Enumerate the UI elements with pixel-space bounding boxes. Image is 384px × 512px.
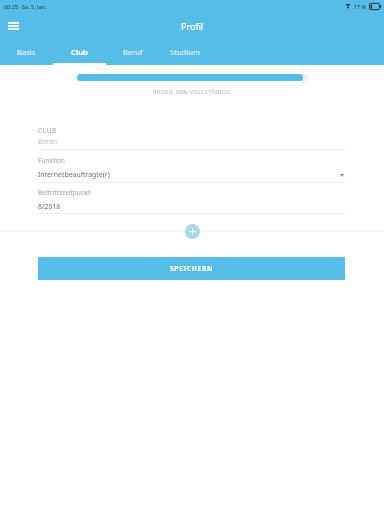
button[interactable]: Club <box>53 43 106 65</box>
staticText: Profil <box>181 20 204 32</box>
button[interactable]: CLUB <box>38 123 345 150</box>
button[interactable]: Open navigation menu <box>1 14 25 38</box>
staticText: Berlin <box>38 137 58 146</box>
button[interactable]: Basis <box>0 43 53 65</box>
staticText: Beruf <box>123 47 143 57</box>
staticText: 00:25 <box>4 3 18 10</box>
staticText: SPEICHERN <box>170 264 214 273</box>
staticText: 17 % <box>354 3 367 10</box>
staticText: Funktion <box>38 156 65 165</box>
staticText: Beitrittszeitpunkt <box>38 188 91 197</box>
button[interactable]: SPEICHERN <box>38 257 345 280</box>
staticText: Basis <box>17 47 36 57</box>
button[interactable]: Beruf <box>106 43 159 65</box>
button[interactable]: Beitrittszeitpunkt <box>38 185 345 214</box>
staticText: CLUB <box>38 126 57 135</box>
staticText: Club <box>71 47 88 57</box>
staticText: 8/2018 <box>38 202 61 211</box>
button[interactable]: Funktion <box>38 153 345 183</box>
button[interactable]: Studium <box>159 43 212 65</box>
staticText: Sa. 5. Jan. <box>22 3 47 10</box>
staticText: Internetbeauftragte(r) <box>38 170 110 179</box>
staticText: PROFIL 98% VOLLSTÄNDIG <box>0 88 384 96</box>
staticText: Studium <box>170 47 201 57</box>
button[interactable]: Add entry <box>185 224 200 239</box>
